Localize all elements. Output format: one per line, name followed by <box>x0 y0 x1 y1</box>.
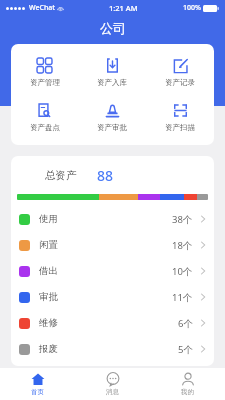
staticText: 18个 <box>172 239 193 252</box>
staticText: 首页 <box>31 388 44 396</box>
button[interactable]: 首页 <box>0 368 75 400</box>
button[interactable]: 资产审批 <box>78 98 146 136</box>
staticText: 报废 <box>39 343 58 355</box>
button[interactable]: 资产扫描 <box>146 98 214 136</box>
staticText: 消息 <box>106 388 119 396</box>
button[interactable]: 闲置 <box>11 232 214 258</box>
staticText: 10个 <box>172 265 193 278</box>
staticText: 资产盘点 <box>30 123 60 132</box>
button[interactable]: 使用 <box>11 206 214 232</box>
staticText: 6个 <box>178 317 193 330</box>
staticText: 100% <box>183 3 201 13</box>
staticText: 总资产 <box>45 169 77 182</box>
button[interactable]: 审批 <box>11 284 214 310</box>
staticText: WeChat <box>29 3 55 13</box>
staticText: 资产审批 <box>97 123 127 132</box>
staticText: 维修 <box>39 317 58 329</box>
button[interactable]: 借出 <box>11 258 214 284</box>
staticText: 使用 <box>39 213 58 225</box>
button[interactable]: 报废 <box>11 336 214 362</box>
staticText: 资产记录 <box>165 78 195 87</box>
button[interactable]: 资产记录 <box>146 53 214 91</box>
staticText: 资产管理 <box>30 78 60 87</box>
staticText: 38个 <box>172 213 193 226</box>
staticText: 资产入库 <box>97 78 127 87</box>
staticText: 88 <box>97 166 114 185</box>
staticText: 11个 <box>172 291 193 304</box>
staticText: 借出 <box>39 265 58 277</box>
staticText: 公司 <box>100 20 126 36</box>
staticText: 审批 <box>39 291 58 303</box>
staticText: 我的 <box>181 388 194 396</box>
staticText: 1:21 AM <box>109 3 138 13</box>
staticText: 资产扫描 <box>165 123 195 132</box>
button[interactable]: 消息 <box>75 368 150 400</box>
staticText: 闲置 <box>39 239 58 251</box>
button[interactable]: 我的 <box>150 368 225 400</box>
button[interactable]: 资产管理 <box>11 53 78 91</box>
button[interactable]: 资产盘点 <box>11 98 78 136</box>
button[interactable]: 资产入库 <box>78 53 146 91</box>
staticText: 5个 <box>178 343 193 356</box>
button[interactable]: 维修 <box>11 310 214 336</box>
